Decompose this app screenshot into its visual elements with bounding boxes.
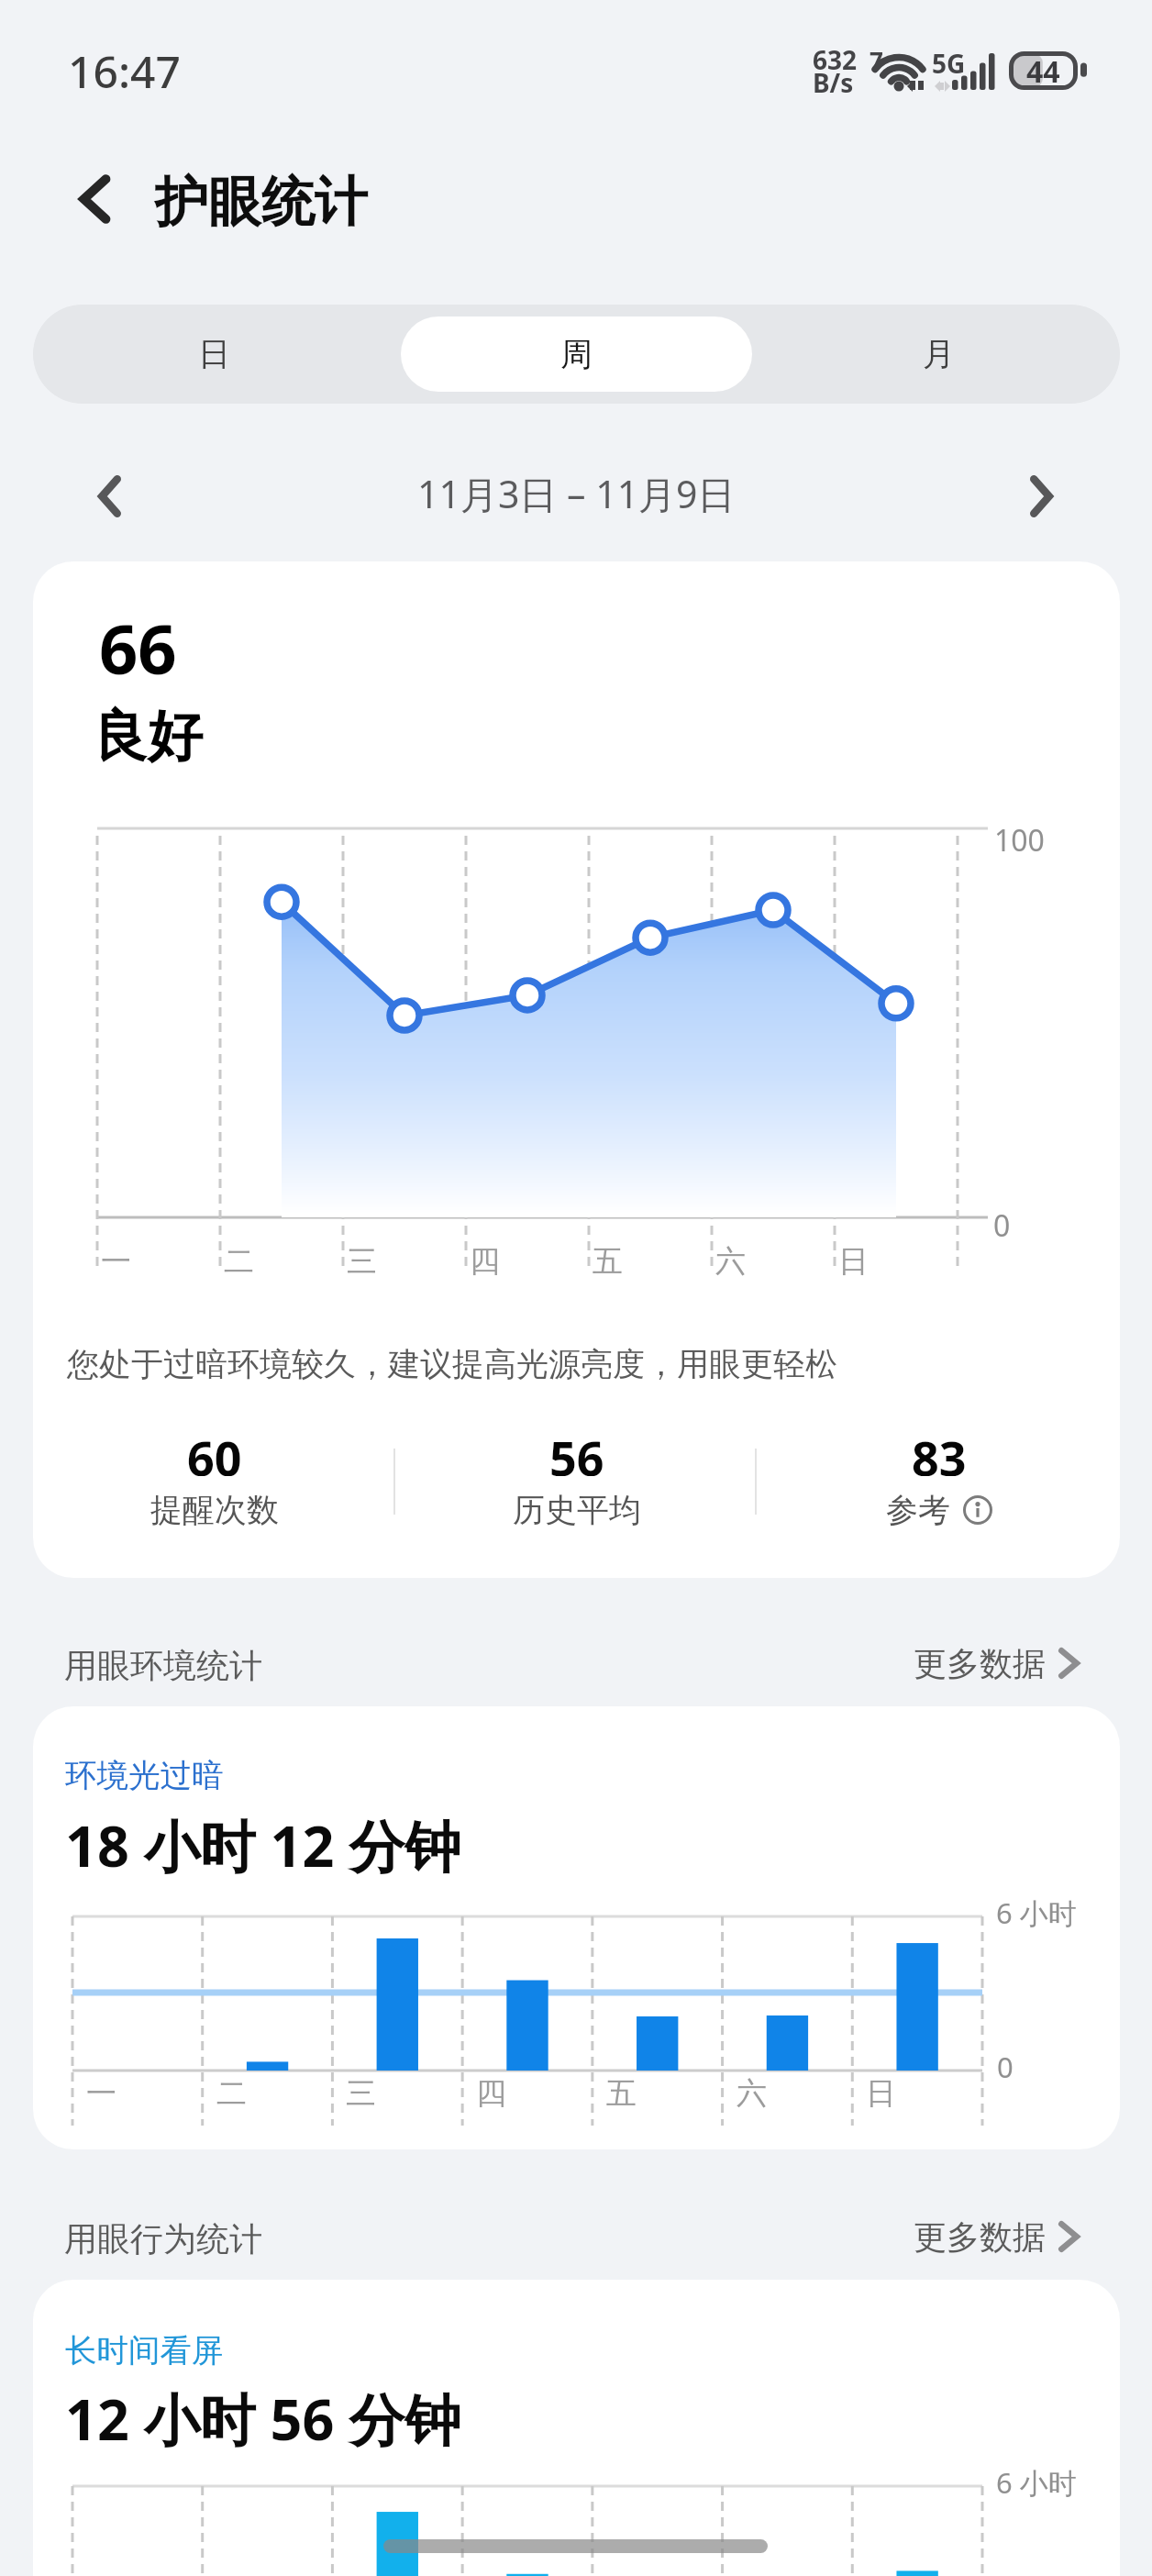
staticText: 长时间看屏	[65, 2331, 224, 2371]
staticText: 提醒次数	[150, 1490, 279, 1530]
staticText: 6 小时	[996, 1893, 1077, 1932]
button[interactable]: 月	[763, 316, 1114, 392]
button[interactable]: 83	[758, 1425, 1120, 1553]
staticText: 周	[560, 334, 593, 374]
staticText: 日	[198, 334, 230, 374]
button[interactable]: 周	[401, 316, 752, 392]
staticText: 一	[101, 1242, 131, 1281]
button[interactable]: 56	[395, 1425, 758, 1553]
staticText: 用眼行为统计	[64, 2218, 262, 2260]
staticText: 更多数据	[914, 1643, 1046, 1684]
staticText: 0	[993, 1205, 1011, 1246]
staticText: 日	[866, 2074, 896, 2113]
staticText: 历史平均	[513, 1490, 641, 1530]
button[interactable]: 更多数据	[914, 1631, 1080, 1695]
staticText: 日	[838, 1242, 869, 1281]
button[interactable]: Back	[55, 158, 138, 240]
staticText: 您处于过暗环境较久，建议提高光源亮度，用眼更轻松	[67, 1344, 837, 1384]
staticText: 五	[606, 2074, 637, 2113]
staticText: 护眼统计	[155, 169, 368, 236]
staticText: 二	[216, 2074, 247, 2113]
staticText: 100	[994, 820, 1045, 861]
staticText: 60	[187, 1425, 242, 1476]
staticText: 16:47	[68, 41, 181, 101]
staticText: 五	[593, 1242, 623, 1281]
staticText: 四	[470, 1242, 500, 1281]
button[interactable]: Next week	[997, 452, 1085, 540]
staticText: 44	[1026, 51, 1060, 90]
staticText: 参考	[886, 1490, 950, 1530]
staticText: 0	[997, 2048, 1014, 2086]
button[interactable]: 60	[33, 1425, 395, 1553]
staticText: 7	[870, 44, 883, 76]
staticText: 良好	[93, 702, 203, 772]
staticText: 更多数据	[914, 2216, 1046, 2258]
staticText: 三	[346, 2074, 376, 2113]
staticText: 83	[912, 1425, 967, 1476]
staticText: 六	[715, 1242, 746, 1281]
button[interactable]: 日	[39, 316, 390, 392]
button[interactable]: 更多数据	[914, 2204, 1080, 2269]
staticText: 66	[99, 602, 177, 694]
staticText: 三	[347, 1242, 377, 1281]
staticText: 632	[813, 42, 858, 77]
staticText: 一	[86, 2074, 116, 2113]
staticText: 56	[549, 1425, 604, 1476]
staticText: 11月3日 – 11月9日	[417, 468, 736, 519]
staticText: 六	[737, 2074, 767, 2113]
staticText: B/s	[813, 65, 854, 100]
button[interactable]: Previous week	[65, 452, 153, 540]
staticText: 18 小时 12 分钟	[65, 1807, 461, 1883]
staticText: 12 小时 56 分钟	[65, 2381, 461, 2457]
staticText: 二	[224, 1242, 254, 1281]
staticText: 用眼环境统计	[64, 1645, 262, 1686]
staticText: 月	[923, 334, 955, 374]
staticText: 6 小时	[996, 2463, 1077, 2502]
staticText: 5G	[932, 46, 966, 81]
staticText: 四	[476, 2074, 506, 2113]
staticText: 环境光过暗	[65, 1756, 224, 1795]
